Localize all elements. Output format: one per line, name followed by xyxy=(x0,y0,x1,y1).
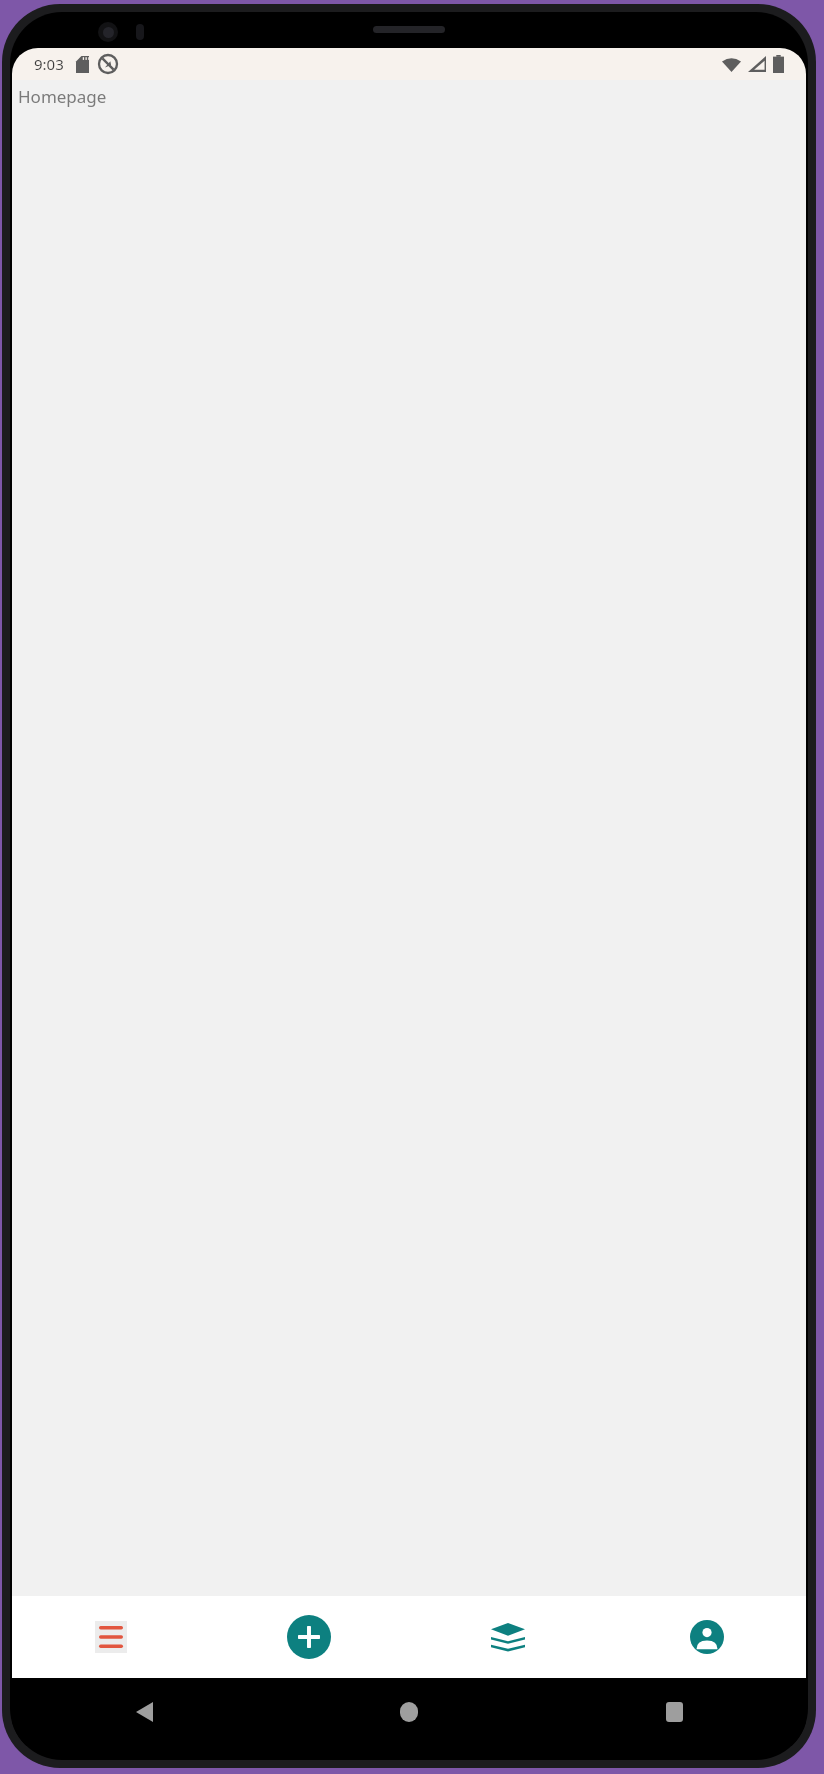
staticText: Homepage xyxy=(18,85,107,108)
staticText: 9:03 xyxy=(34,54,64,74)
button[interactable]: Add xyxy=(287,1615,331,1659)
button[interactable]: Home xyxy=(387,1690,431,1734)
button[interactable]: Back xyxy=(122,1690,166,1734)
button[interactable]: Menu xyxy=(88,1614,134,1660)
button[interactable]: Recent apps xyxy=(652,1690,696,1734)
button[interactable]: Account xyxy=(684,1614,730,1660)
button[interactable]: Layers xyxy=(485,1614,531,1660)
